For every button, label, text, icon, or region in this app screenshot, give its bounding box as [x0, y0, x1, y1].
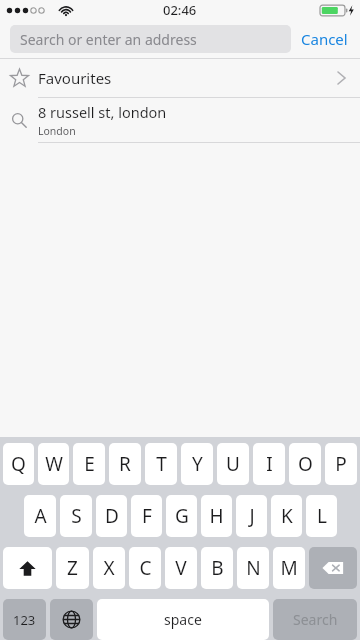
staticText: H: [209, 503, 224, 529]
button[interactable]: E: [73, 443, 105, 485]
button[interactable]: D: [96, 495, 127, 537]
button[interactable]: Switch keyboard language: [50, 599, 93, 640]
button[interactable]: Y: [181, 443, 213, 485]
staticText: L: [317, 503, 327, 529]
button[interactable]: O: [289, 443, 321, 485]
button[interactable]: Shift: [3, 547, 52, 589]
button[interactable]: J: [236, 495, 267, 537]
button[interactable]: 123: [3, 599, 46, 640]
button[interactable]: L: [306, 495, 337, 537]
button[interactable]: U: [217, 443, 249, 485]
staticText: K: [281, 503, 293, 529]
button[interactable]: Cancel: [291, 29, 350, 49]
button[interactable]: H: [201, 495, 232, 537]
button[interactable]: R: [109, 443, 141, 485]
staticText: space: [164, 610, 202, 629]
button[interactable]: Z: [56, 547, 89, 589]
button[interactable]: Search: [273, 599, 357, 640]
button[interactable]: Favourites: [0, 59, 360, 97]
button[interactable]: N: [237, 547, 269, 589]
staticText: W: [45, 451, 63, 477]
staticText: E: [84, 451, 95, 477]
staticText: O: [298, 451, 313, 477]
button[interactable]: X: [93, 547, 125, 589]
staticText: Cancel: [301, 29, 348, 49]
staticText: 8 russell st, london: [38, 102, 167, 122]
staticText: I: [266, 451, 273, 477]
button[interactable]: M: [273, 547, 305, 589]
staticText: V: [175, 555, 187, 581]
staticText: P: [335, 451, 347, 477]
staticText: B: [211, 555, 224, 581]
staticText: 123: [13, 611, 36, 629]
button[interactable]: C: [129, 547, 161, 589]
staticText: N: [246, 555, 261, 581]
button[interactable]: Backspace: [309, 547, 357, 589]
button[interactable]: P: [325, 443, 357, 485]
staticText: M: [280, 555, 298, 581]
staticText: D: [105, 503, 119, 529]
button[interactable]: 8 russell st, london: [0, 98, 360, 142]
button[interactable]: T: [145, 443, 177, 485]
button[interactable]: Q: [3, 443, 34, 485]
button[interactable]: I: [253, 443, 285, 485]
staticText: Y: [192, 451, 203, 477]
staticText: C: [139, 555, 152, 581]
staticText: A: [34, 503, 47, 529]
button[interactable]: S: [60, 495, 92, 537]
staticText: X: [103, 555, 115, 581]
staticText: G: [175, 503, 189, 529]
button[interactable]: W: [38, 443, 69, 485]
staticText: Q: [11, 451, 26, 477]
staticText: Z: [67, 555, 78, 581]
staticText: Search: [293, 610, 338, 629]
button[interactable]: Search or enter an address: [10, 25, 291, 53]
staticText: Favourites: [38, 68, 112, 88]
staticText: London: [38, 124, 76, 138]
staticText: S: [71, 503, 82, 529]
button[interactable]: G: [166, 495, 197, 537]
staticText: J: [249, 503, 255, 529]
staticText: R: [119, 451, 131, 477]
button[interactable]: K: [271, 495, 302, 537]
staticText: F: [142, 503, 152, 529]
button[interactable]: F: [131, 495, 162, 537]
button[interactable]: space: [97, 599, 269, 640]
button[interactable]: A: [24, 495, 56, 537]
staticText: Search or enter an address: [20, 30, 197, 49]
staticText: 02:46: [163, 1, 197, 19]
staticText: U: [226, 451, 240, 477]
button[interactable]: B: [201, 547, 233, 589]
staticText: T: [156, 451, 167, 477]
button[interactable]: V: [165, 547, 197, 589]
